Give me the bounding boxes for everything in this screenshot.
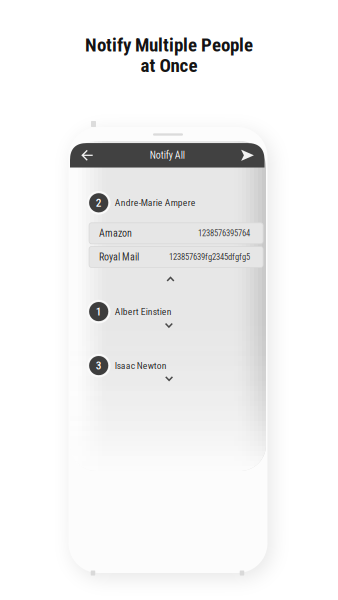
staticText: 123857639fg2345dfgfg5: [169, 252, 250, 262]
button[interactable]: 3: [89, 355, 263, 377]
button[interactable]: Send: [230, 143, 264, 168]
button[interactable]: Amazon: [89, 223, 263, 244]
staticText: 2: [96, 196, 102, 209]
staticText: Royal Mail: [99, 251, 139, 263]
staticText: Notify All: [150, 149, 185, 161]
button[interactable]: 2: [89, 192, 263, 214]
button[interactable]: Back: [70, 143, 104, 168]
staticText: 1: [96, 305, 102, 318]
button[interactable]: Collapse: [157, 271, 183, 287]
staticText: Amazon: [99, 227, 132, 239]
staticText: Andre-Marie Ampere: [115, 197, 196, 208]
button[interactable]: Expand: [156, 371, 182, 387]
staticText: Albert Einstien: [115, 306, 172, 317]
button[interactable]: Expand: [156, 318, 182, 334]
staticText: Isaac Newton: [115, 360, 167, 371]
staticText: at Once: [140, 54, 197, 77]
staticText: 1238576395764: [198, 228, 250, 238]
staticText: 3: [96, 359, 102, 372]
button[interactable]: Royal Mail: [89, 246, 263, 267]
staticText: Notify Multiple People: [85, 34, 253, 56]
button[interactable]: 1: [89, 301, 263, 323]
